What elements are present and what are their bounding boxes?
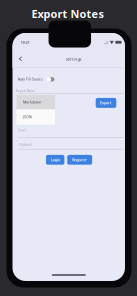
staticText: Login — [51, 157, 60, 162]
button[interactable]: Auto Fill Source — [46, 77, 55, 82]
button[interactable]: Back — [16, 54, 25, 64]
staticText: JSON — [23, 114, 32, 119]
staticText: Auto Fill Source — [18, 76, 43, 81]
button[interactable]: Register — [67, 155, 92, 165]
staticText: Export Notes — [16, 89, 35, 93]
button[interactable]: Login — [46, 155, 64, 165]
staticText: Export — [100, 100, 112, 105]
staticText: Export Notes — [31, 6, 103, 21]
staticText: Password — [19, 142, 32, 147]
button[interactable]: Export — [96, 98, 116, 108]
button[interactable]: JSON — [16, 109, 55, 125]
button[interactable]: Markdown — [16, 95, 55, 109]
staticText: Settings — [66, 56, 82, 62]
staticText: Register — [72, 157, 87, 162]
staticText: Markdown — [23, 99, 41, 105]
staticText: 10:21 — [21, 40, 30, 45]
staticText: Email — [17, 128, 26, 132]
